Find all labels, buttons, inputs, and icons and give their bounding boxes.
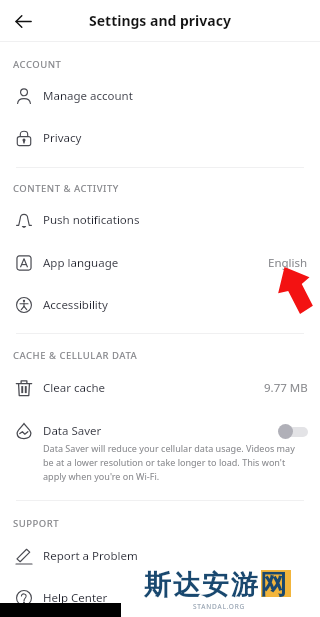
button[interactable]: Clear cache (0, 367, 320, 409)
staticText: STANDAL.ORG (193, 602, 246, 611)
staticText: Accessibility (43, 297, 108, 313)
button[interactable]: Push notifications (0, 199, 320, 241)
staticText: SUPPORT (13, 517, 60, 530)
button[interactable]: Accessibility (0, 284, 320, 326)
button[interactable]: Data Saver (0, 410, 320, 452)
staticText: CACHE & CELLULAR DATA (13, 349, 138, 362)
staticText: Report a Problem (43, 548, 138, 564)
staticText: Manage account (43, 88, 133, 104)
button[interactable]: Report a Problem (0, 535, 320, 577)
staticText: Data Saver will reduce your cellular dat… (43, 442, 295, 483)
button[interactable]: Manage account (0, 75, 320, 117)
staticText: CONTENT & ACTIVITY (13, 182, 119, 195)
staticText: 斯达安游网 (143, 568, 288, 602)
staticText: English (268, 255, 308, 271)
button[interactable]: Privacy (0, 117, 320, 159)
staticText: 9.77 MB (264, 380, 308, 396)
staticText: Settings and privacy (89, 11, 231, 30)
staticText: ACCOUNT (13, 58, 62, 71)
button[interactable]: Help Center (0, 577, 320, 617)
button[interactable]: Back (8, 6, 38, 36)
staticText: App language (43, 255, 119, 271)
staticText: Help Center (43, 590, 108, 606)
staticText: Privacy (43, 130, 82, 146)
staticText: Clear cache (43, 380, 105, 396)
staticText: Data Saver (43, 423, 102, 439)
button[interactable]: App language (0, 242, 320, 284)
staticText: Push notifications (43, 212, 140, 228)
